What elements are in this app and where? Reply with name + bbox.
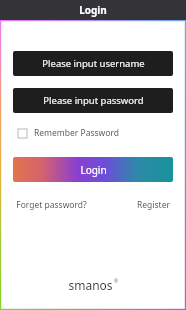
staticText: Please input username [42,57,145,70]
button[interactable]: Login [13,157,173,182]
staticText: Please input password [43,94,144,107]
button[interactable]: Register [137,196,170,214]
button[interactable]: Please input username [13,51,173,76]
staticText: Forget password? [16,199,87,211]
button[interactable]: Please input password [13,88,173,113]
staticText: smanos [68,277,113,293]
staticText: Register [137,199,170,211]
staticText: Remember Password [34,127,119,139]
button[interactable]: Forget password? [16,196,87,214]
staticText: Login [80,163,107,177]
staticText: Login [79,3,107,17]
button[interactable]: Remember Password [18,127,119,139]
staticText: ® [114,278,118,284]
